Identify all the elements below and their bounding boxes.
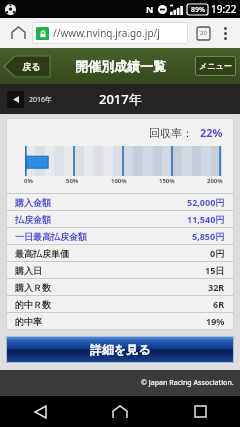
- button[interactable]: 一日最高払戻金額: [6, 228, 234, 244]
- staticText: 回収率：: [149, 126, 193, 140]
- button[interactable]: 戻る: [4, 56, 50, 77]
- staticText: 100%: [111, 177, 127, 185]
- staticText: 0円: [210, 247, 225, 259]
- staticText: 20: [200, 29, 207, 37]
- staticText: 5,850円: [192, 230, 225, 242]
- staticText: 詳細を見る: [90, 342, 151, 357]
- other: Previous year: [7, 91, 24, 108]
- button[interactable]: 購入Ｒ数: [6, 279, 234, 295]
- staticText: 50%: [66, 177, 79, 185]
- staticText: 的中率: [15, 316, 42, 327]
- staticText: 150%: [159, 177, 175, 185]
- staticText: メニュー: [199, 61, 232, 71]
- staticText: 52,000円: [187, 196, 225, 208]
- staticText: 15日: [205, 264, 225, 276]
- button[interactable]: Home: [80, 396, 160, 427]
- button[interactable]: 的中率: [6, 313, 234, 329]
- button[interactable]: //www.nvinq.jra.go.jp/j: [32, 22, 188, 44]
- button[interactable]: 的中Ｒ数: [6, 296, 234, 312]
- staticText: N: [146, 3, 154, 15]
- button[interactable]: Tabs: [193, 23, 213, 43]
- staticText: //www.nvinq.jra.go.jp/j: [53, 26, 160, 40]
- button[interactable]: 購入金額: [6, 194, 234, 210]
- staticText: 払戻金額: [15, 214, 51, 225]
- staticText: 購入Ｒ数: [15, 282, 51, 293]
- button[interactable]: 最高払戻単価: [6, 245, 234, 261]
- button[interactable]: 詳細を見る: [6, 336, 234, 363]
- button[interactable]: Previous year: [7, 91, 53, 108]
- staticText: 22%: [200, 125, 223, 140]
- staticText: 19%: [206, 315, 225, 327]
- staticText: 2016年: [29, 95, 53, 105]
- staticText: 200%: [207, 177, 223, 185]
- button[interactable]: 購入日: [6, 262, 234, 278]
- staticText: 2017年: [99, 90, 142, 108]
- staticText: 6R: [213, 298, 225, 310]
- staticText: 一日最高払戻金額: [15, 231, 87, 242]
- staticText: 開催別成績一覧: [75, 58, 166, 74]
- button[interactable]: More options: [214, 22, 236, 44]
- staticText: 的中Ｒ数: [15, 299, 51, 310]
- staticText: 11,540円: [187, 213, 225, 225]
- button[interactable]: Recent apps: [160, 396, 240, 427]
- staticText: 購入金額: [15, 197, 51, 208]
- button[interactable]: Home: [6, 21, 30, 45]
- staticText: 最高払戻単価: [15, 248, 69, 259]
- button[interactable]: 払戻金額: [6, 211, 234, 227]
- staticText: 19:22: [211, 2, 237, 16]
- staticText: © Japan Racing Association.: [141, 378, 234, 388]
- staticText: 購入日: [15, 265, 42, 276]
- button[interactable]: Back: [0, 396, 80, 427]
- staticText: 0%: [24, 177, 33, 185]
- staticText: 89%: [191, 5, 205, 15]
- staticText: 32R: [208, 281, 225, 293]
- button[interactable]: メニュー: [195, 56, 236, 76]
- staticText: 戻る: [22, 61, 41, 72]
